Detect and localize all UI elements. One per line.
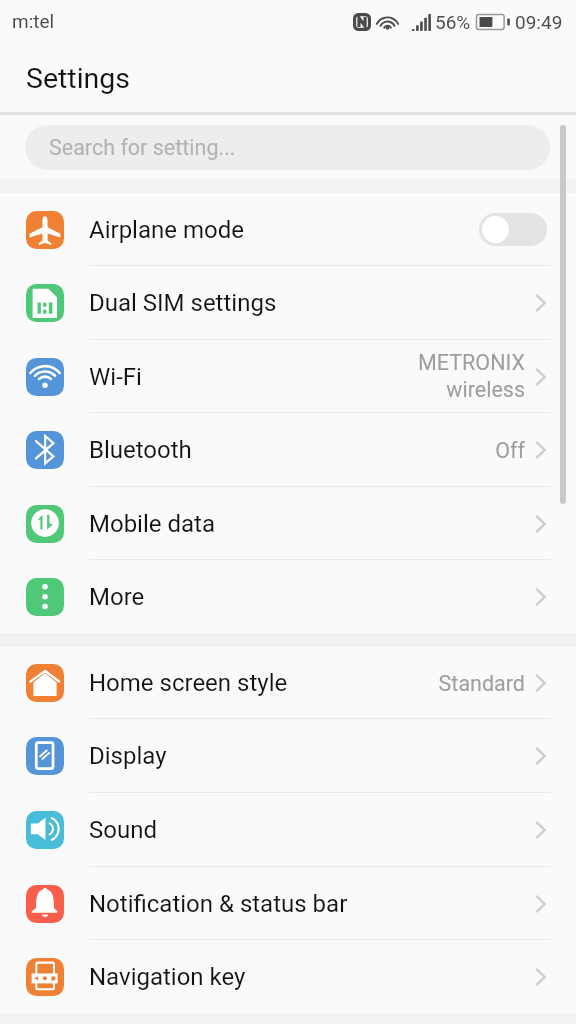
button[interactable]: Airplane mode toggle <box>479 213 547 246</box>
button[interactable]: Wi-Fi <box>0 340 576 413</box>
staticText: More <box>89 583 145 611</box>
button[interactable]: More <box>0 560 576 633</box>
staticText: Standard <box>438 671 525 696</box>
button[interactable]: Dual SIM settings <box>0 266 576 340</box>
staticText: 09:49 <box>515 11 563 33</box>
staticText: Home screen style <box>89 669 288 697</box>
staticText: Search for setting... <box>49 135 236 160</box>
button[interactable]: Notification & status bar <box>0 867 576 940</box>
staticText: Dual SIM settings <box>89 289 277 317</box>
button[interactable]: Airplane mode <box>0 193 576 266</box>
button[interactable]: Display <box>0 719 576 793</box>
staticText: 56% <box>435 11 471 33</box>
button[interactable]: Bluetooth <box>0 413 576 487</box>
button[interactable]: Navigation key <box>0 940 576 1014</box>
staticText: Wi-Fi <box>89 363 142 391</box>
button[interactable]: Mobile data <box>0 487 576 560</box>
staticText: Sound <box>89 816 157 844</box>
staticText: m:tel <box>12 10 55 32</box>
button[interactable]: Search for setting... <box>25 125 550 170</box>
staticText: Navigation key <box>89 963 246 991</box>
staticText: Mobile data <box>89 510 215 538</box>
staticText: Display <box>89 742 167 770</box>
staticText: Settings <box>26 62 131 95</box>
staticText: Notification & status bar <box>89 890 348 918</box>
staticText: Bluetooth <box>89 436 192 464</box>
staticText: Airplane mode <box>89 216 244 244</box>
staticText: METRONIX wireless <box>418 350 525 403</box>
staticText: Off <box>495 438 525 463</box>
button[interactable]: Home screen style <box>0 647 576 719</box>
button[interactable]: Sound <box>0 793 576 867</box>
